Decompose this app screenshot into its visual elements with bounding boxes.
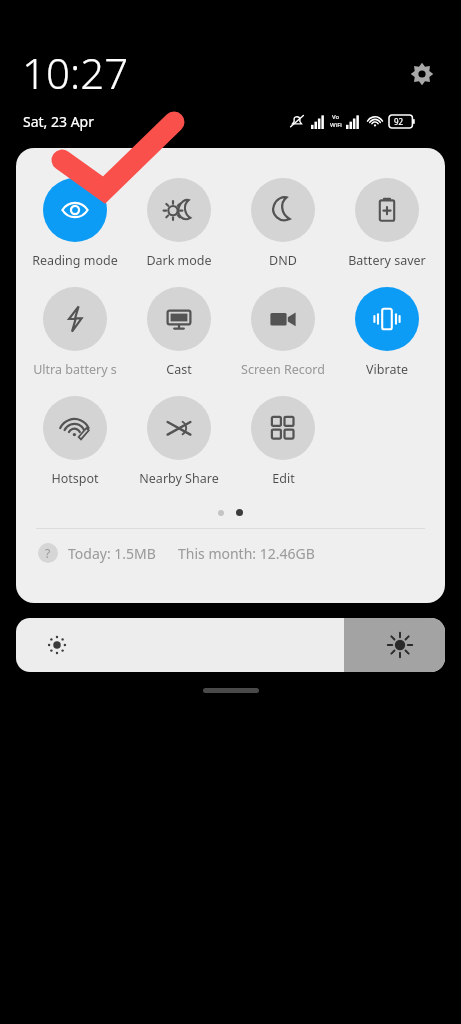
button[interactable]: Cast	[127, 287, 231, 378]
button[interactable]: Brightness	[16, 618, 445, 672]
button[interactable]: Dark mode	[127, 178, 231, 269]
button[interactable]: Screen Record	[231, 287, 335, 378]
staticText: Ultra battery s	[33, 361, 117, 378]
staticText: Dark mode	[146, 252, 212, 269]
staticText: ?	[45, 545, 51, 561]
button[interactable]: DND	[231, 178, 335, 269]
staticText: Vibrate	[366, 361, 408, 378]
button[interactable]: Hotspot	[22, 396, 127, 487]
staticText: Vo	[332, 113, 340, 121]
staticText: Edit	[272, 470, 295, 487]
staticText: Reading mode	[32, 252, 118, 269]
staticText: Sat, 23 Apr	[23, 112, 94, 131]
staticText: Nearby Share	[139, 470, 219, 487]
staticText: 10:27	[22, 44, 129, 101]
button[interactable]: Settings	[404, 56, 440, 92]
staticText: 92	[394, 116, 404, 127]
button[interactable]: Edit	[231, 396, 335, 487]
staticText: This month: 12.46GB	[178, 544, 315, 563]
button[interactable]: Battery saver	[335, 178, 439, 269]
button[interactable]: Ultra battery s	[22, 287, 127, 378]
staticText: DND	[269, 252, 297, 269]
button[interactable]: ?	[38, 543, 445, 563]
staticText: Battery saver	[348, 252, 426, 269]
button[interactable]: Nearby Share	[127, 396, 231, 487]
button[interactable]: Vibrate	[335, 287, 439, 378]
staticText: Hotspot	[51, 470, 99, 487]
button[interactable]: Reading mode	[22, 178, 127, 269]
staticText: Screen Record	[241, 361, 325, 378]
staticText: Cast	[166, 361, 192, 378]
staticText: Today: 1.5MB	[68, 544, 156, 563]
staticText: WiFi	[330, 121, 342, 129]
